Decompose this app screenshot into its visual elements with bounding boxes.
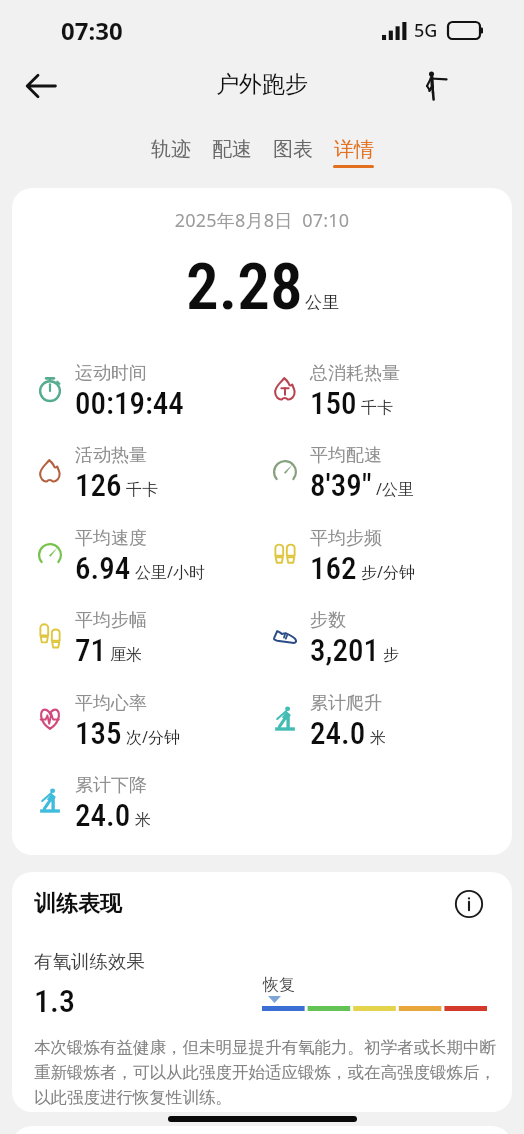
staticText: 公里/小时 <box>135 561 205 583</box>
button[interactable]: 总消耗热量 <box>272 347 512 430</box>
staticText: 训练表现 <box>34 890 122 918</box>
staticText: 平均步频 <box>310 527 382 550</box>
staticText: 135 <box>75 715 122 751</box>
button[interactable]: 平均速度 <box>37 512 246 595</box>
staticText: 2025年8月8日 07:10 <box>12 208 512 233</box>
button[interactable]: Back <box>16 61 66 111</box>
staticText: 累计下降 <box>75 774 147 797</box>
staticText: 步/分钟 <box>361 561 415 583</box>
staticText: 24.0 <box>310 715 366 751</box>
staticText: 户外跑步 <box>0 70 524 99</box>
button[interactable]: 运动时间 <box>37 347 246 430</box>
staticText: 24.0 <box>75 797 131 833</box>
button[interactable]: 活动热量 <box>37 429 246 512</box>
staticText: 07:30 <box>61 14 123 47</box>
button[interactable]: 平均心率 <box>37 677 246 760</box>
button[interactable]: Info <box>452 887 486 921</box>
staticText: 步 <box>383 645 399 665</box>
button[interactable]: 累计爬升 <box>272 677 512 760</box>
staticText: 162 <box>310 550 357 586</box>
staticText: 厘米 <box>110 645 142 665</box>
staticText: 活动热量 <box>75 444 147 467</box>
staticText: 平均配速 <box>310 444 382 467</box>
staticText: 有氧训练效果 <box>34 950 145 973</box>
staticText: 恢复 <box>263 975 295 995</box>
button[interactable]: 详情 <box>323 137 384 168</box>
staticText: 本次锻炼有益健康，但未明显提升有氧能力。初学者或长期中断重新锻炼者，可以从此强度… <box>34 1037 496 1108</box>
button[interactable]: 轨迹 <box>140 137 201 168</box>
staticText: 轨迹 <box>151 137 191 162</box>
staticText: 米 <box>135 810 151 830</box>
staticText: 3,201 <box>310 632 379 668</box>
staticText: 71 <box>75 632 106 668</box>
staticText: 千卡 <box>361 398 393 418</box>
staticText: 总消耗热量 <box>310 362 400 385</box>
staticText: 配速 <box>212 137 252 162</box>
staticText: 00:19:44 <box>75 385 184 421</box>
staticText: 126 <box>75 467 122 503</box>
staticText: 平均步幅 <box>75 609 147 632</box>
staticText: 公里 <box>305 292 339 313</box>
button[interactable]: Workout type <box>409 62 457 110</box>
button[interactable]: 图表 <box>262 137 323 168</box>
button[interactable]: 平均步频 <box>272 512 512 595</box>
button[interactable]: 平均配速 <box>272 429 512 512</box>
staticText: 千卡 <box>126 480 158 500</box>
staticText: 1.3 <box>34 982 75 1020</box>
staticText: 米 <box>370 728 386 748</box>
staticText: 步数 <box>310 609 346 632</box>
staticText: 图表 <box>273 137 313 162</box>
staticText: /公里 <box>376 478 414 500</box>
staticText: 8'39" <box>310 467 372 503</box>
staticText: 次/分钟 <box>126 726 180 748</box>
staticText: 运动时间 <box>75 362 147 385</box>
staticText: 平均速度 <box>75 527 147 550</box>
staticText: 6.94 <box>75 550 131 586</box>
staticText: 累计爬升 <box>310 692 382 715</box>
staticText: 平均心率 <box>75 692 147 715</box>
button[interactable]: 配速 <box>201 137 262 168</box>
button[interactable]: 平均步幅 <box>37 594 246 677</box>
staticText: 详情 <box>334 137 374 162</box>
button[interactable]: 累计下降 <box>37 759 246 842</box>
staticText: 150 <box>310 385 357 421</box>
button[interactable]: 步数 <box>272 594 512 677</box>
staticText: 2.28 <box>186 249 303 325</box>
staticText: 5G <box>414 18 438 43</box>
